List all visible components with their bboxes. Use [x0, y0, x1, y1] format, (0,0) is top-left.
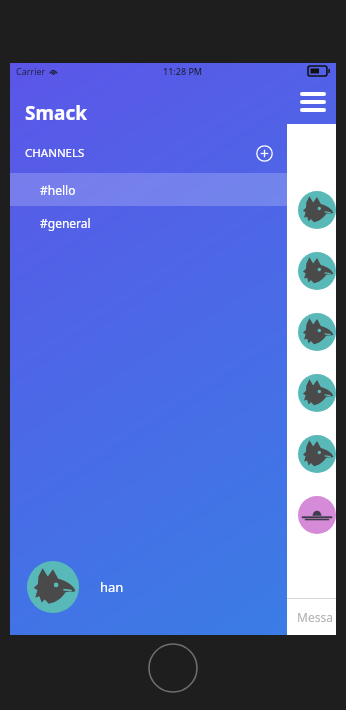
staticText: #general — [40, 215, 91, 231]
button[interactable]: #general — [10, 206, 287, 239]
button[interactable]: han — [10, 557, 287, 617]
button[interactable]: Message — [287, 599, 336, 635]
button[interactable]: Message from user — [298, 496, 336, 534]
button[interactable]: Message from user — [298, 191, 336, 229]
button[interactable]: Home — [148, 643, 198, 693]
staticText: CHANNELS — [25, 145, 85, 161]
staticText: #hello — [40, 182, 76, 198]
staticText: 11:28 PM — [163, 65, 203, 77]
button[interactable]: Message from user — [298, 435, 336, 473]
staticText: Smack — [25, 100, 87, 126]
staticText: Message — [297, 609, 336, 625]
staticText: Carrier — [16, 65, 46, 77]
button[interactable]: Add channel — [253, 142, 275, 164]
staticText: han — [100, 578, 124, 596]
button[interactable]: #hello — [10, 173, 287, 206]
button[interactable]: Message from user — [298, 252, 336, 290]
button[interactable]: Open menu — [296, 87, 330, 117]
button[interactable]: Message from user — [298, 374, 336, 412]
button[interactable]: Message from user — [298, 313, 336, 351]
